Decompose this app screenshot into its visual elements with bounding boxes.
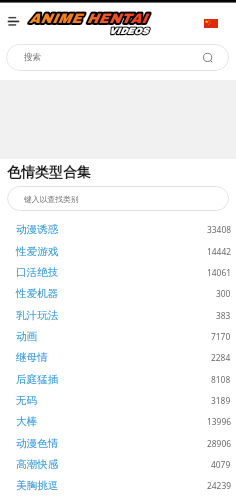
staticText: 色情类型合集: [7, 164, 91, 182]
staticText: 4079: [211, 459, 231, 470]
button[interactable]: 性爱游戏: [0, 241, 236, 262]
staticText: 7170: [211, 331, 231, 342]
staticText: 2284: [211, 352, 231, 363]
staticText: 键入以查找类别: [24, 194, 79, 204]
staticText: 动画: [16, 330, 38, 343]
staticText: 14442: [207, 246, 231, 257]
staticText: 乳汁玩法: [16, 309, 59, 322]
staticText: 13996: [207, 416, 231, 427]
button[interactable]: 口活绝技: [0, 262, 236, 283]
staticText: 动漫色情: [16, 437, 59, 450]
button[interactable]: 继母情: [0, 347, 236, 368]
button[interactable]: 动漫诱惑: [0, 219, 236, 240]
staticText: ANIME HENTAI: [29, 11, 148, 26]
staticText: 后庭猛插: [16, 373, 59, 386]
staticText: 383: [216, 310, 231, 321]
staticText: 继母情: [16, 351, 48, 364]
staticText: 大棒: [16, 415, 38, 428]
staticText: 高潮快感: [16, 458, 59, 471]
staticText: 性爱游戏: [16, 245, 59, 258]
button[interactable]: 大棒: [0, 411, 236, 432]
staticText: 33408: [207, 224, 231, 235]
button[interactable]: 键入以查找类别: [7, 186, 229, 211]
staticText: 24239: [207, 480, 231, 491]
button[interactable]: ANIME HENTAI: [29, 11, 155, 41]
button[interactable]: Menu: [5, 12, 23, 30]
button[interactable]: 动漫色情: [0, 433, 236, 454]
staticText: VIDEOS: [109, 26, 149, 36]
staticText: 300: [216, 288, 231, 299]
button[interactable]: 搜索: [6, 44, 229, 71]
staticText: 28906: [207, 438, 231, 449]
other: Search: [201, 50, 217, 66]
button[interactable]: 乳汁玩法: [0, 305, 236, 326]
staticText: 8108: [211, 374, 231, 385]
staticText: ANIME HENTAI: [29, 11, 148, 26]
staticText: 性爱机器: [16, 287, 59, 300]
button[interactable]: Language: [204, 19, 218, 28]
button[interactable]: 后庭猛插: [0, 369, 236, 390]
staticText: 3189: [211, 395, 231, 406]
staticText: VIDEOS: [109, 26, 149, 36]
staticText: 口活绝技: [16, 266, 59, 279]
button[interactable]: 无码: [0, 390, 236, 411]
button[interactable]: 美胸挑逗: [0, 475, 236, 496]
staticText: 动漫诱惑: [16, 223, 59, 236]
staticText: 无码: [16, 394, 38, 407]
button[interactable]: 性爱机器: [0, 283, 236, 304]
staticText: 美胸挑逗: [16, 479, 59, 492]
staticText: 搜索: [24, 52, 41, 63]
button[interactable]: 高潮快感: [0, 454, 236, 475]
button[interactable]: 动画: [0, 326, 236, 347]
staticText: 14061: [207, 267, 231, 278]
